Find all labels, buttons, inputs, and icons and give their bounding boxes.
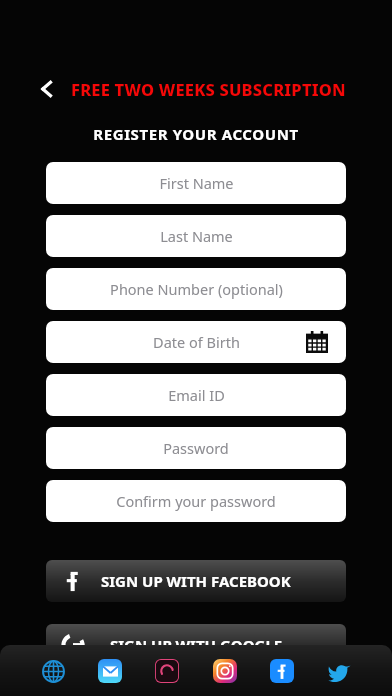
staticText: Phone Number (optional) (110, 279, 283, 299)
button[interactable]: Instagram (205, 651, 245, 691)
staticText: Password (163, 438, 229, 458)
button[interactable]: Twitter (319, 651, 359, 691)
button[interactable]: SIGN UP WITH FACEBOOK (46, 560, 346, 602)
staticText: Last Name (160, 226, 233, 246)
button[interactable]: Email ID (46, 374, 346, 416)
staticText: FREE TWO WEEKS SUBSCRIPTION (71, 78, 346, 100)
staticText: Date of Birth (153, 332, 240, 352)
staticText: SIGN UP WITH GOOGLE (110, 635, 283, 655)
button[interactable]: SIGN UP WITH GOOGLE (46, 624, 346, 666)
button[interactable]: Confirm your password (46, 480, 346, 522)
button[interactable]: Phone Number (optional) (46, 268, 346, 310)
button[interactable]: Last Name (46, 215, 346, 257)
button[interactable]: Facebook (262, 651, 302, 691)
button[interactable]: Call (147, 651, 187, 691)
button[interactable]: Date of Birth (46, 321, 346, 363)
button[interactable]: Back (30, 72, 64, 106)
button[interactable]: First Name (46, 162, 346, 204)
staticText: First Name (159, 173, 234, 193)
staticText: Confirm your password (116, 491, 276, 511)
button[interactable]: Password (46, 427, 346, 469)
button[interactable]: Email (90, 651, 130, 691)
staticText: Email ID (168, 385, 225, 405)
staticText: REGISTER YOUR ACCOUNT (0, 124, 392, 144)
staticText: SIGN UP WITH FACEBOOK (101, 571, 291, 591)
button[interactable]: Website (33, 651, 73, 691)
